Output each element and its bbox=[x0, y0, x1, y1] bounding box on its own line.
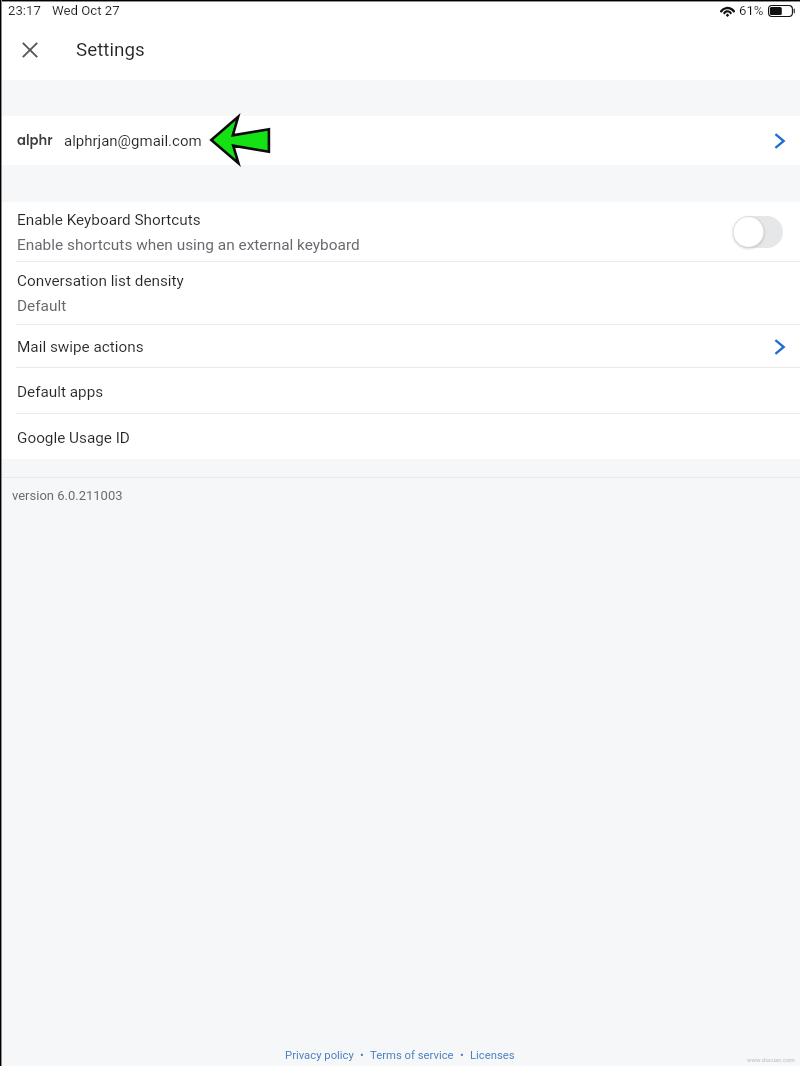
button[interactable]: Licenses bbox=[470, 1049, 515, 1062]
staticText: Settings bbox=[76, 39, 145, 61]
staticText: 61% bbox=[739, 3, 764, 18]
button[interactable]: Google Usage ID bbox=[0, 414, 800, 459]
button[interactable]: Mail swipe actions bbox=[764, 331, 796, 363]
staticText: Conversation list density bbox=[17, 272, 184, 290]
staticText: Default bbox=[17, 297, 67, 315]
staticText: Mail swipe actions bbox=[17, 338, 144, 356]
button[interactable]: alphr bbox=[0, 116, 800, 165]
staticText: • bbox=[460, 1049, 464, 1062]
staticText: alphrjan@gmail.com bbox=[64, 132, 202, 150]
staticText: www.docuac.com bbox=[747, 1056, 795, 1063]
staticText: 23:17 bbox=[8, 3, 41, 18]
staticText: Enable Keyboard Shortcuts bbox=[17, 211, 201, 229]
button[interactable]: Mail swipe actions bbox=[0, 325, 800, 368]
button[interactable]: Conversation list density bbox=[0, 262, 800, 325]
button[interactable]: Enable Keyboard Shortcuts bbox=[0, 202, 800, 262]
button[interactable]: Close bbox=[14, 34, 46, 66]
button[interactable]: Privacy policy bbox=[285, 1049, 354, 1062]
staticText: • bbox=[360, 1049, 364, 1062]
staticText: Default apps bbox=[17, 383, 104, 401]
other: Account settings bbox=[764, 125, 796, 157]
button[interactable]: Toggle Enable Keyboard Shortcuts bbox=[733, 215, 783, 249]
button[interactable]: Default apps bbox=[0, 368, 800, 414]
staticText: alphr bbox=[17, 131, 53, 149]
staticText: Wed Oct 27 bbox=[52, 3, 120, 18]
staticText: Google Usage ID bbox=[17, 429, 130, 447]
staticText: version 6.0.211003 bbox=[12, 488, 123, 503]
staticText: Enable shortcuts when using an external … bbox=[17, 236, 360, 254]
button[interactable]: Terms of service bbox=[370, 1049, 454, 1062]
